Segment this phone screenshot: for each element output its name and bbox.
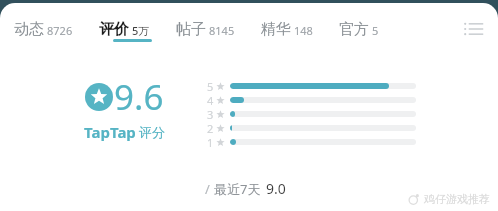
staticText: 8145 [209,23,235,38]
button[interactable]: 评价 [99,12,150,47]
staticText: 9.6 [114,73,164,121]
staticText: 动态 [14,20,44,39]
staticText: 3 [207,107,216,121]
staticText: 5 [207,79,216,93]
button[interactable]: 精华 [261,12,313,47]
staticText: 4 [207,93,216,107]
staticText: TapTap [84,122,136,142]
staticText: 1 [207,135,216,149]
button[interactable]: 帖子 [176,12,235,47]
staticText: 鸡仔游戏推荐 [424,192,490,206]
staticText: 评分 [139,124,165,140]
staticText: 9.0 [266,179,286,198]
staticText: 2 [207,121,216,135]
button[interactable]: 官方 [339,12,379,47]
button[interactable]: List view options [463,18,485,40]
staticText: 148 [294,23,313,38]
staticText: 官方 [339,20,369,39]
staticText: 8726 [47,23,73,38]
staticText: / [205,180,214,198]
staticText: 5 [372,23,379,38]
staticText: 评价 [99,20,129,39]
staticText: 精华 [261,20,291,39]
button[interactable]: 动态 [14,12,73,47]
staticText: 帖子 [176,20,206,39]
staticText: 5万 [132,23,150,38]
staticText: 最近7天 [214,180,261,198]
